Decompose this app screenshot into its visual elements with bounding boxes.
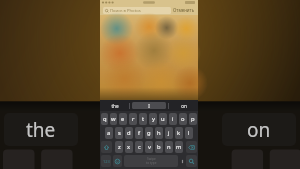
staticText: p [191,115,195,123]
button[interactable]: h [155,127,163,139]
button[interactable]: q [101,113,108,125]
button[interactable]: t [139,113,147,125]
staticText: on [247,117,271,143]
staticText: e [121,115,125,123]
button[interactable]: b [155,141,163,153]
staticText: n [167,143,171,151]
staticText: i [172,115,174,123]
staticText: f [138,129,140,137]
button[interactable]: g [145,127,153,139]
staticText: Swipe [147,157,156,161]
button[interactable]: Settings [180,155,184,167]
button[interactable]: l [185,127,193,139]
button[interactable]: u [159,113,167,125]
button[interactable]: i [169,113,177,125]
button[interactable]: v [145,141,153,153]
staticText: Поиск в Photos [110,8,141,14]
staticText: j [168,129,170,137]
button[interactable]: Search [186,155,197,167]
staticText: r [132,115,135,123]
staticText: g [147,129,151,137]
button[interactable]: I [132,102,166,109]
button[interactable]: on [222,113,296,146]
staticText: 123 [103,159,110,164]
staticText: b [157,143,161,151]
button[interactable]: e [119,113,127,125]
staticText: x [127,143,131,151]
button[interactable]: o [179,113,187,125]
button[interactable]: r [129,113,137,125]
button[interactable]: s [115,127,123,139]
staticText: the [111,103,119,109]
staticText: c [138,143,141,151]
button[interactable]: x [125,141,133,153]
staticText: q [103,115,107,123]
button[interactable]: k [175,127,183,139]
staticText: u [161,115,165,123]
staticText: v [148,143,151,151]
button[interactable]: Отменить [173,7,195,13]
button[interactable]: w [110,113,117,125]
button[interactable]: c [135,141,143,153]
staticText: on [181,103,187,109]
staticText: the [26,117,56,143]
button[interactable]: m [175,141,183,153]
button[interactable]: the [102,102,127,109]
button[interactable]: Shift [101,141,112,153]
button[interactable]: on [171,102,196,109]
button[interactable]: Backspace [186,141,197,153]
button[interactable]: n [165,141,173,153]
button[interactable]: y [149,113,157,125]
staticText: w [111,115,116,123]
staticText: d [127,129,131,137]
staticText: h [157,129,161,137]
staticText: k [177,129,181,137]
staticText: t [142,115,145,123]
staticText: I [148,103,150,109]
staticText: l [188,129,190,137]
button[interactable]: j [165,127,173,139]
button[interactable]: Emoji [113,155,122,167]
staticText: s [118,129,121,137]
button[interactable]: a [105,127,113,139]
staticText: a [107,129,111,137]
staticText: Отменить [173,7,195,13]
button[interactable]: the [4,113,78,146]
button[interactable]: Swipe [124,155,178,167]
button[interactable]: d [125,127,133,139]
button[interactable]: 123 [101,155,111,167]
button[interactable]: z [115,141,123,153]
button[interactable]: f [135,127,143,139]
staticText: m [176,143,182,151]
staticText: to type [146,161,157,165]
staticText: o [181,115,185,123]
staticText: y [152,115,155,123]
staticText: z [118,143,121,151]
button[interactable]: Поиск в Photos [103,7,171,14]
button[interactable]: p [189,113,197,125]
